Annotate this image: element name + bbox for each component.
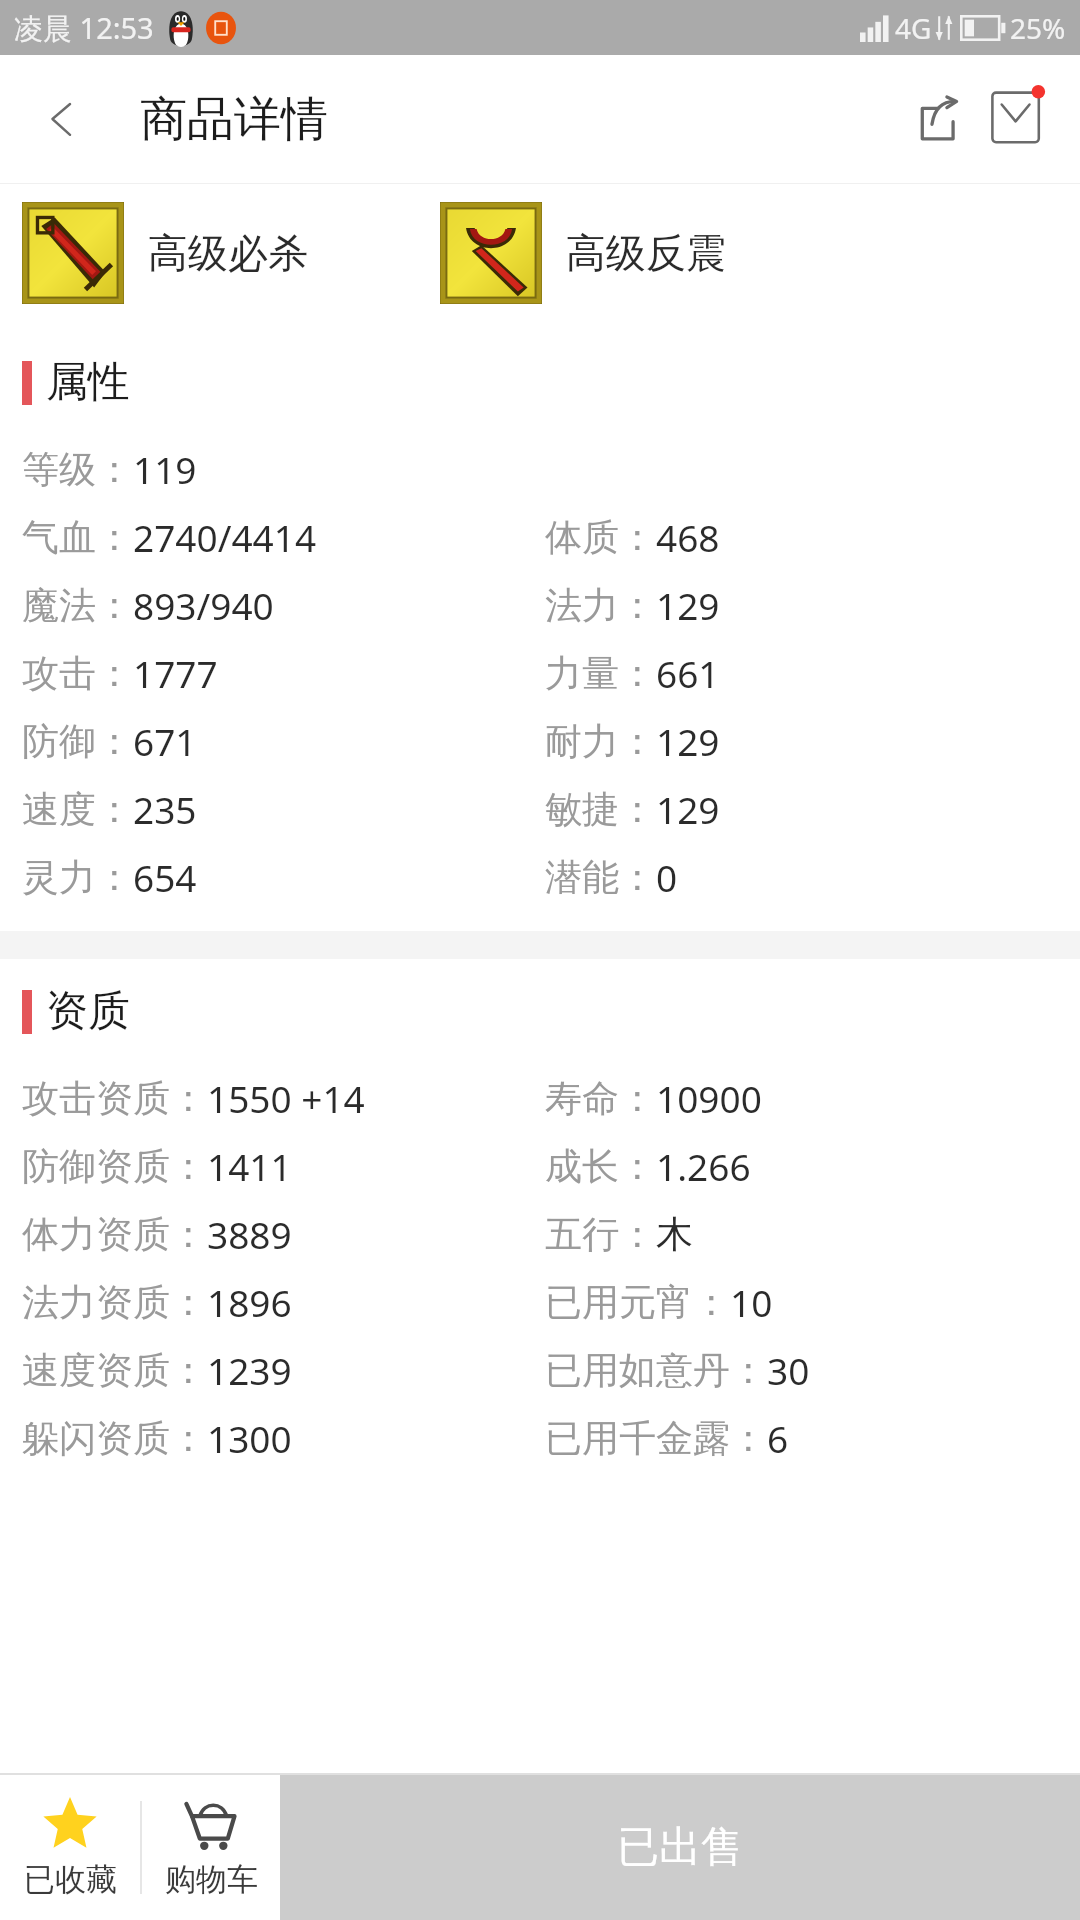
staticText: 235 bbox=[133, 784, 197, 834]
staticText: 商品详情 bbox=[140, 90, 328, 149]
staticText: 魔法： bbox=[22, 582, 133, 629]
staticText: 敏捷： bbox=[545, 786, 656, 833]
staticText: 1896 bbox=[207, 1277, 292, 1327]
staticText: 已出售 bbox=[617, 1821, 743, 1874]
staticText: 已用千金露： bbox=[545, 1415, 767, 1462]
staticText: 4G bbox=[895, 9, 932, 47]
staticText: 129 bbox=[656, 580, 720, 630]
staticText: 木 bbox=[656, 1211, 693, 1258]
staticText: 已用元宵： bbox=[545, 1279, 730, 1326]
button[interactable]: 分享 bbox=[900, 80, 978, 158]
staticText: 6 bbox=[767, 1413, 789, 1463]
staticText: 法力： bbox=[545, 582, 656, 629]
staticText: 速度资质： bbox=[22, 1347, 207, 1394]
staticText: 高级必杀 bbox=[148, 228, 308, 278]
staticText: 661 bbox=[656, 648, 720, 698]
staticText: 129 bbox=[656, 716, 720, 766]
staticText: 3889 bbox=[207, 1209, 292, 1259]
staticText: 2740/4414 bbox=[133, 512, 317, 562]
staticText: 1411 bbox=[207, 1141, 292, 1191]
staticText: 成长： bbox=[545, 1143, 656, 1190]
staticText: 1.266 bbox=[656, 1141, 751, 1191]
staticText: 五行： bbox=[545, 1211, 656, 1258]
staticText: 力量： bbox=[545, 650, 656, 697]
staticText: 0 bbox=[656, 852, 678, 902]
button[interactable]: 消息 bbox=[978, 79, 1058, 159]
staticText: 1777 bbox=[133, 648, 218, 698]
staticText: 体质： bbox=[545, 514, 656, 561]
staticText: 1239 bbox=[207, 1345, 292, 1395]
staticText: 防御： bbox=[22, 718, 133, 765]
button[interactable]: 已出售 bbox=[280, 1775, 1080, 1920]
staticText: 法力资质： bbox=[22, 1279, 207, 1326]
staticText: 灵力： bbox=[22, 854, 133, 901]
staticText: 25% bbox=[1010, 9, 1066, 47]
staticText: 等级： bbox=[22, 446, 133, 493]
button[interactable]: 返回 bbox=[26, 82, 100, 156]
staticText: 属性 bbox=[46, 356, 130, 409]
staticText: 已用如意丹： bbox=[545, 1347, 767, 1394]
button[interactable]: 购物车 bbox=[142, 1775, 280, 1920]
staticText: 耐力： bbox=[545, 718, 656, 765]
staticText: 潜能： bbox=[545, 854, 656, 901]
staticText: 寿命： bbox=[545, 1075, 656, 1122]
staticText: 893/940 bbox=[133, 580, 274, 630]
button[interactable]: 高级反震 bbox=[440, 202, 726, 304]
staticText: 凌晨 12:53 bbox=[14, 8, 154, 48]
staticText: 购物车 bbox=[165, 1860, 258, 1899]
staticText: 10 bbox=[730, 1277, 773, 1327]
staticText: 已收藏 bbox=[24, 1860, 117, 1899]
staticText: 671 bbox=[133, 716, 197, 766]
staticText: 1300 bbox=[207, 1413, 292, 1463]
staticText: 129 bbox=[656, 784, 720, 834]
staticText: 防御资质： bbox=[22, 1143, 207, 1190]
staticText: 气血： bbox=[22, 514, 133, 561]
button[interactable]: 已收藏 bbox=[0, 1775, 140, 1920]
staticText: 119 bbox=[133, 444, 197, 494]
staticText: 资质 bbox=[46, 985, 130, 1038]
staticText: 体力资质： bbox=[22, 1211, 207, 1258]
button[interactable]: 高级必杀 bbox=[22, 202, 420, 304]
staticText: 10900 bbox=[656, 1073, 762, 1123]
staticText: 速度： bbox=[22, 786, 133, 833]
staticText: 躲闪资质： bbox=[22, 1415, 207, 1462]
staticText: 高级反震 bbox=[566, 228, 726, 278]
staticText: 攻击资质： bbox=[22, 1075, 207, 1122]
staticText: 1550 +14 bbox=[207, 1073, 365, 1123]
staticText: 攻击： bbox=[22, 650, 133, 697]
staticText: 654 bbox=[133, 852, 197, 902]
staticText: 468 bbox=[656, 512, 720, 562]
staticText: 30 bbox=[767, 1345, 810, 1395]
